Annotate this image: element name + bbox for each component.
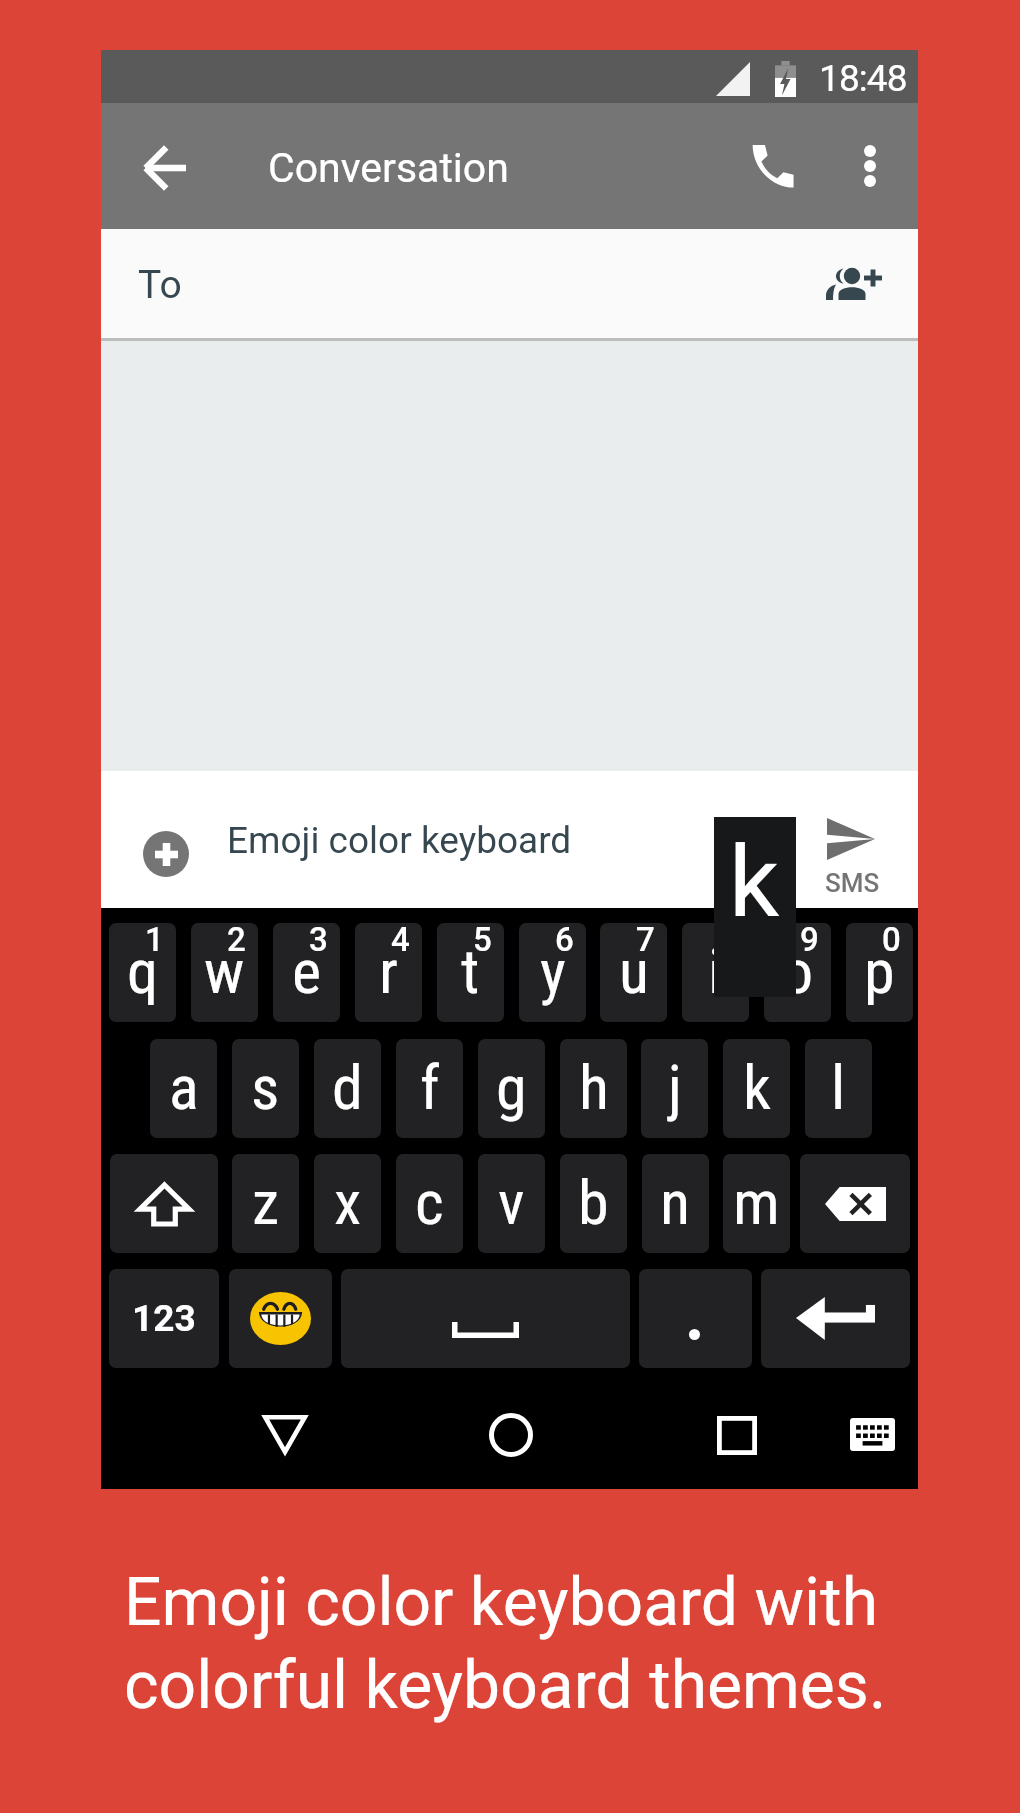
button[interactable]: j [641,1039,708,1138]
staticText: i [708,935,723,1008]
staticText: s [251,1051,280,1124]
button[interactable]: Recents [684,1390,789,1480]
button[interactable]: c [396,1154,463,1253]
button[interactable]: Switch keyboard [820,1389,925,1479]
button[interactable]: Back [232,1389,337,1479]
button[interactable]: g [478,1039,545,1138]
button[interactable]: 9 [764,923,831,1022]
button[interactable]: 5 [437,923,504,1022]
staticText: k [729,824,780,940]
button[interactable]: l [805,1039,872,1138]
staticText: j [668,1051,682,1124]
button[interactable]: 1 [109,923,176,1022]
button[interactable]: d [314,1039,381,1138]
staticText: Conversation [268,144,509,192]
button[interactable]: b [560,1154,627,1253]
staticText: z [252,1166,280,1239]
button[interactable]: Home [458,1390,563,1480]
button[interactable]: f [396,1039,463,1138]
button[interactable]: Enter [761,1269,910,1368]
button[interactable]: m [723,1154,790,1253]
staticText: w [204,935,245,1008]
button[interactable]: Call [722,103,822,229]
staticText: 4 [391,923,410,959]
staticText: Emoji color keyboard [227,819,572,862]
staticText: p [864,935,895,1008]
staticText: 0 [882,923,901,959]
button[interactable]: z [232,1154,299,1253]
button[interactable]: Shift [110,1154,218,1253]
staticText: 123 [132,1297,196,1340]
staticText: r [379,935,398,1008]
staticText: y [540,935,566,1008]
button[interactable]: 6 [519,923,586,1022]
button[interactable]: Numbers [109,1269,219,1368]
staticText: a [169,1051,199,1124]
staticText: SMS [825,868,880,898]
button[interactable]: 2 [191,923,258,1022]
button[interactable]: Backspace [800,1154,910,1253]
button[interactable]: Add contact [807,229,918,341]
button[interactable]: k [723,1039,790,1138]
staticText: 5 [473,923,492,959]
button[interactable]: 0 [846,923,913,1022]
staticText: h [579,1051,609,1124]
staticText: 6 [555,923,574,959]
staticText: d [332,1051,363,1124]
staticText: Emoji color keyboard with [124,1564,879,1641]
button[interactable]: 4 [355,923,422,1022]
staticText: q [127,935,159,1008]
button[interactable]: Space [341,1269,630,1368]
staticText: k [743,1051,771,1124]
button[interactable]: v [478,1154,545,1253]
staticText: 2 [227,923,246,959]
button[interactable]: n [642,1154,709,1253]
staticText: e [292,935,322,1008]
staticText: o [782,935,814,1008]
button[interactable]: Emoji [229,1269,332,1368]
staticText: g [496,1051,527,1124]
staticText: v [498,1166,525,1239]
staticText: 18:48 [819,57,907,100]
staticText: t [461,935,480,1008]
staticText: c [415,1166,444,1239]
button[interactable]: h [560,1039,627,1138]
staticText: 1 [145,923,164,959]
staticText: n [660,1166,691,1239]
staticText: l [831,1051,846,1124]
staticText: m [733,1166,780,1239]
button[interactable]: Attach [143,831,189,877]
button[interactable]: a [150,1039,217,1138]
staticText: f [420,1051,440,1124]
staticText: 3 [309,923,328,959]
staticText: To [138,262,182,308]
button[interactable]: Send SMS [801,771,918,908]
button[interactable]: s [232,1039,299,1138]
staticText: colorful keyboard themes. [124,1647,887,1724]
button[interactable]: 3 [273,923,340,1022]
button[interactable]: 8 [682,923,749,1022]
staticText: 9 [800,923,819,959]
button[interactable]: 7 [600,923,667,1022]
staticText: x [334,1166,362,1239]
button[interactable]: More options [822,103,918,229]
button[interactable]: Back [102,103,228,229]
button[interactable]: x [314,1154,381,1253]
staticText: b [578,1166,609,1239]
button[interactable]: Period [639,1269,752,1368]
staticText: u [619,935,649,1008]
staticText: 7 [636,923,655,959]
